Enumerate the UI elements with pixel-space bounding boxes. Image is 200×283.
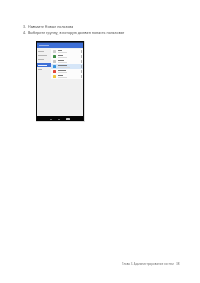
staticText: 4. [23,30,26,35]
button[interactable] [37,63,51,67]
button[interactable] [37,49,51,53]
button[interactable]: More options [51,74,83,79]
staticText: 38 [176,262,180,266]
staticText: Нажмите Новые пользова [28,24,74,29]
staticText: 3. [23,24,26,29]
button[interactable]: More options [51,54,83,59]
staticText: Глава 3. Администрирование систем [122,262,174,266]
button[interactable]: More options [51,49,83,54]
staticText: Выберите группу, в которую должен попаст… [28,30,125,35]
button[interactable]: Recents [66,118,70,120]
button[interactable]: More options [51,64,83,69]
button[interactable] [37,67,51,71]
button[interactable]: More options [51,59,83,64]
button[interactable]: Нажмите Новые пользова [28,24,74,29]
button[interactable] [37,53,51,57]
button[interactable]: More options [51,69,83,74]
button[interactable] [37,57,51,61]
